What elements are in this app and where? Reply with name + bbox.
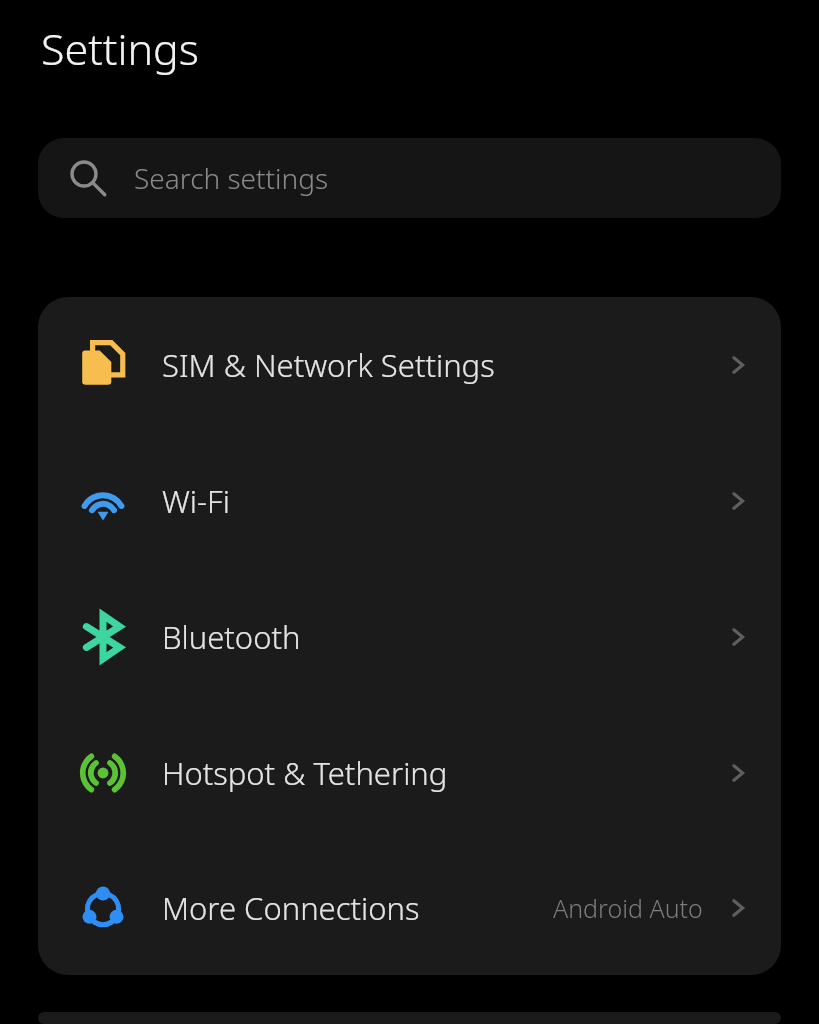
staticText: Bluetooth	[162, 616, 301, 658]
button[interactable]: Search	[38, 138, 781, 218]
button[interactable]: Bluetooth	[38, 569, 781, 705]
button[interactable]: Hotspot & Tethering	[38, 705, 781, 841]
button[interactable]: Wi-Fi	[38, 433, 781, 569]
button[interactable]: More Connections	[38, 841, 781, 975]
staticText: SIM & Network Settings	[162, 344, 495, 386]
staticText: Search settings	[134, 159, 329, 197]
staticText: Android Auto	[553, 891, 703, 925]
staticText: Wi-Fi	[162, 480, 230, 522]
button[interactable]: SIM & Network Settings	[38, 297, 781, 433]
staticText: Settings	[41, 19, 199, 78]
staticText: Hotspot & Tethering	[162, 752, 448, 794]
staticText: More Connections	[162, 887, 420, 929]
other: Search	[68, 158, 108, 198]
